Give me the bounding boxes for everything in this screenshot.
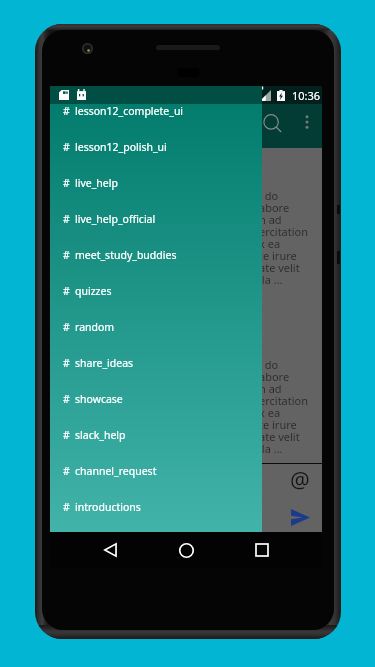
- staticText: #: [63, 356, 70, 370]
- button[interactable]: #: [50, 237, 262, 273]
- button[interactable]: #: [50, 93, 262, 129]
- staticText: n ad: [259, 212, 282, 224]
- staticText: #: [63, 284, 70, 298]
- staticText: l do: [259, 357, 279, 369]
- staticText: lesson12_complete_ui: [75, 104, 184, 118]
- staticText: #: [63, 248, 70, 262]
- staticText: #: [63, 428, 70, 442]
- staticText: meet_study_buddies: [75, 248, 177, 262]
- button[interactable]: More options: [293, 108, 320, 135]
- staticText: live_help_official: [75, 212, 156, 226]
- staticText: abore: [259, 369, 290, 381]
- button[interactable]: Mention: [283, 462, 317, 496]
- staticText: ate velit: [259, 260, 300, 272]
- staticText: live_help: [75, 176, 118, 190]
- button[interactable]: #: [50, 345, 262, 381]
- button[interactable]: #: [50, 309, 262, 345]
- staticText: lesson12_polish_ui: [75, 140, 167, 154]
- button[interactable]: #: [50, 417, 262, 453]
- staticText: ercitation: [259, 224, 309, 236]
- staticText: abore: [259, 200, 290, 212]
- button[interactable]: Home: [168, 532, 204, 568]
- button[interactable]: #: [50, 273, 262, 309]
- button[interactable]: Send: [283, 500, 317, 534]
- staticText: random: [75, 320, 115, 334]
- staticText: 10:36: [292, 88, 321, 103]
- staticText: te irure: [259, 417, 297, 429]
- button[interactable]: #: [50, 165, 262, 201]
- staticText: @: [290, 464, 310, 494]
- button[interactable]: #: [50, 201, 262, 237]
- staticText: lla ...: [259, 272, 283, 284]
- button[interactable]: Search: [255, 108, 291, 144]
- staticText: introductions: [75, 500, 141, 514]
- staticText: #: [63, 464, 70, 478]
- staticText: #: [63, 320, 70, 334]
- staticText: #: [63, 392, 70, 406]
- button[interactable]: #: [50, 129, 262, 165]
- staticText: quizzes: [75, 284, 112, 298]
- staticText: #: [63, 104, 70, 118]
- staticText: #: [63, 176, 70, 190]
- staticText: share_ideas: [75, 356, 134, 370]
- staticText: #: [63, 212, 70, 226]
- staticText: channel_request: [75, 464, 157, 478]
- staticText: lla ...: [259, 441, 283, 453]
- staticText: n ad: [259, 381, 282, 393]
- button[interactable]: #: [50, 381, 262, 417]
- staticText: #: [63, 500, 70, 514]
- staticText: ercitation: [259, 393, 309, 405]
- staticText: ate velit: [259, 429, 300, 441]
- staticText: te irure: [259, 248, 297, 260]
- staticText: x ea: [259, 405, 281, 417]
- staticText: slack_help: [75, 428, 126, 442]
- staticText: x ea: [259, 236, 281, 248]
- staticText: #: [63, 140, 70, 154]
- staticText: l do: [259, 188, 279, 200]
- button[interactable]: Recents: [244, 532, 280, 568]
- button[interactable]: #: [50, 489, 262, 525]
- button[interactable]: #: [50, 453, 262, 489]
- staticText: showcase: [75, 392, 123, 406]
- button[interactable]: Back: [93, 532, 129, 568]
